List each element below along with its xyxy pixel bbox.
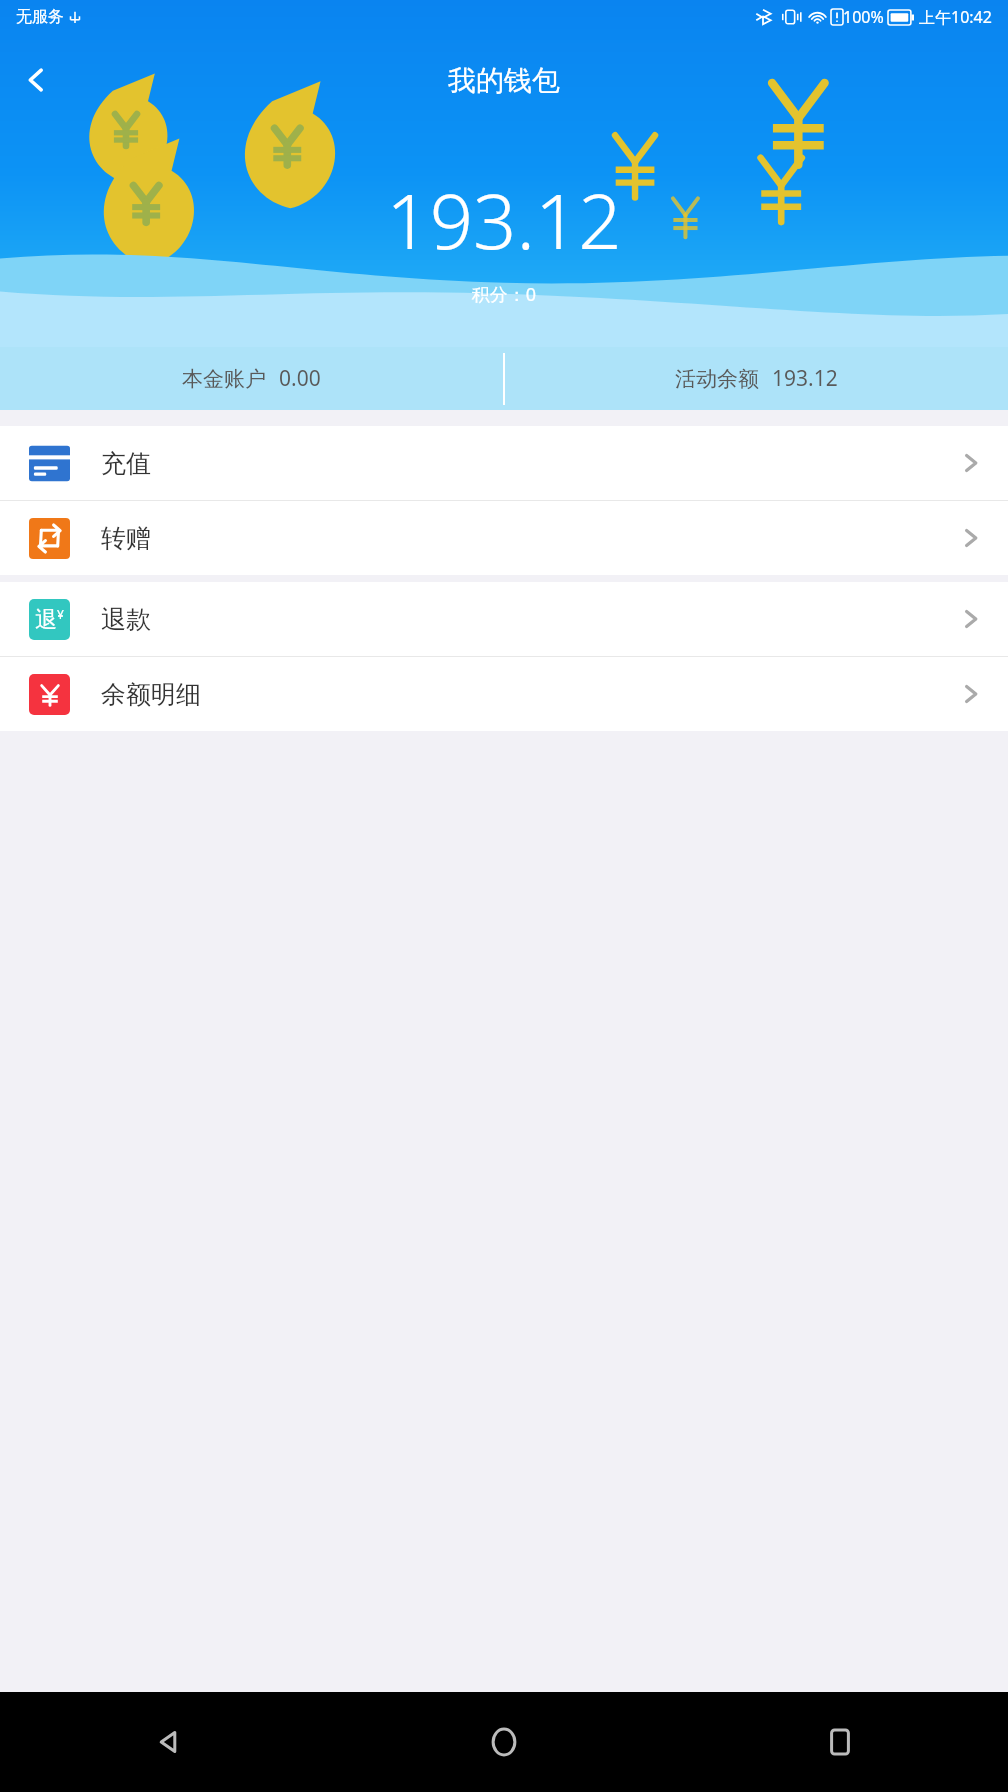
button[interactable]: Home [336, 1692, 672, 1792]
button[interactable]: 充值 [0, 426, 1008, 500]
staticText: 100% [843, 6, 884, 28]
button[interactable]: Back [8, 52, 64, 108]
button[interactable]: 本金账户 [0, 347, 503, 410]
staticText: 退款 [101, 604, 151, 635]
staticText: 充值 [101, 448, 151, 479]
staticText: 我的钱包 [448, 63, 560, 98]
button[interactable]: 活动余额 [505, 347, 1008, 410]
staticText: 活动余额 [675, 366, 759, 392]
staticText: 无服务 [16, 7, 64, 27]
staticText: 上午10:42 [919, 6, 992, 28]
staticText: ¥ [57, 606, 64, 622]
button[interactable]: 退 [0, 582, 1008, 656]
button[interactable]: Back [0, 1692, 336, 1792]
button[interactable]: Recents [672, 1692, 1008, 1792]
button[interactable]: 余额明细 [0, 657, 1008, 731]
staticText: 193.12 [772, 364, 838, 393]
staticText: 本金账户 [182, 366, 266, 392]
staticText: 转赠 [101, 523, 151, 554]
staticText: 余额明细 [101, 679, 201, 710]
button[interactable]: 转赠 [0, 501, 1008, 575]
staticText: 积分：0 [0, 282, 1008, 307]
staticText: 0.00 [279, 364, 321, 393]
staticText: 193.12 [0, 168, 1008, 272]
staticText: 退 [35, 606, 57, 634]
